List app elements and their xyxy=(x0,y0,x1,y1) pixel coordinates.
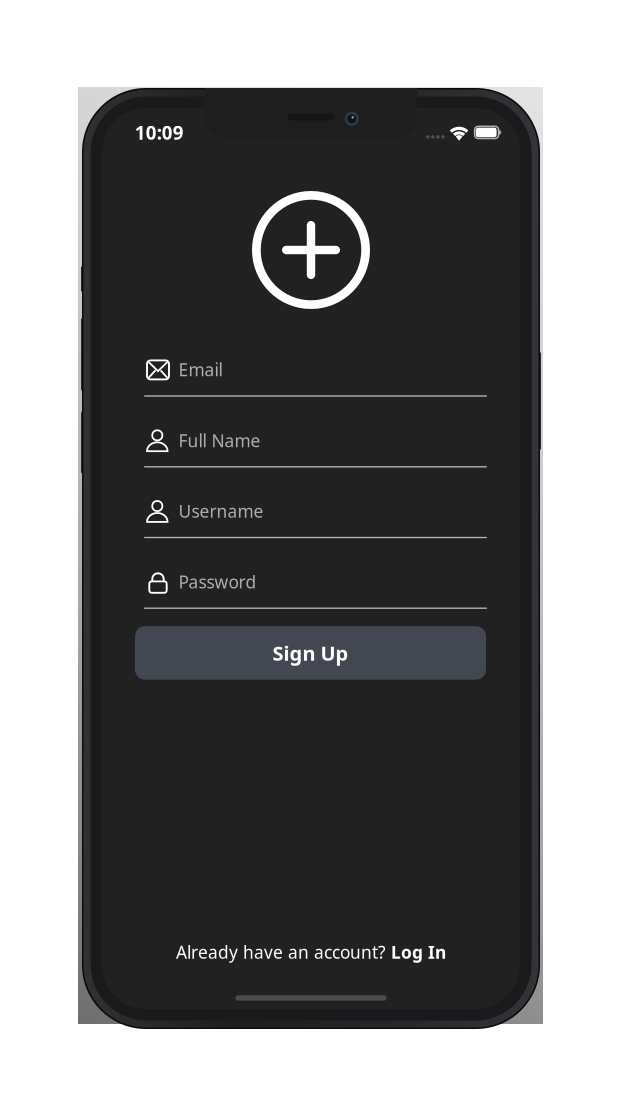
staticText: Full Name xyxy=(179,429,261,452)
staticText: Sign Up xyxy=(272,640,348,666)
staticText: Email xyxy=(179,358,223,381)
staticText: Password xyxy=(179,570,257,593)
button[interactable]: Email xyxy=(102,108,520,1009)
staticText: Already have an account? xyxy=(176,940,391,963)
button[interactable]: Username xyxy=(102,108,520,1009)
staticText: Username xyxy=(179,500,264,523)
staticText: 10:09 xyxy=(135,120,184,145)
button[interactable]: Sign Up xyxy=(135,626,486,680)
button[interactable]: Full Name xyxy=(102,108,520,1009)
button[interactable]: Password xyxy=(102,108,520,1009)
button[interactable]: Already have an account? xyxy=(176,940,446,963)
staticText: Log In xyxy=(391,940,446,963)
